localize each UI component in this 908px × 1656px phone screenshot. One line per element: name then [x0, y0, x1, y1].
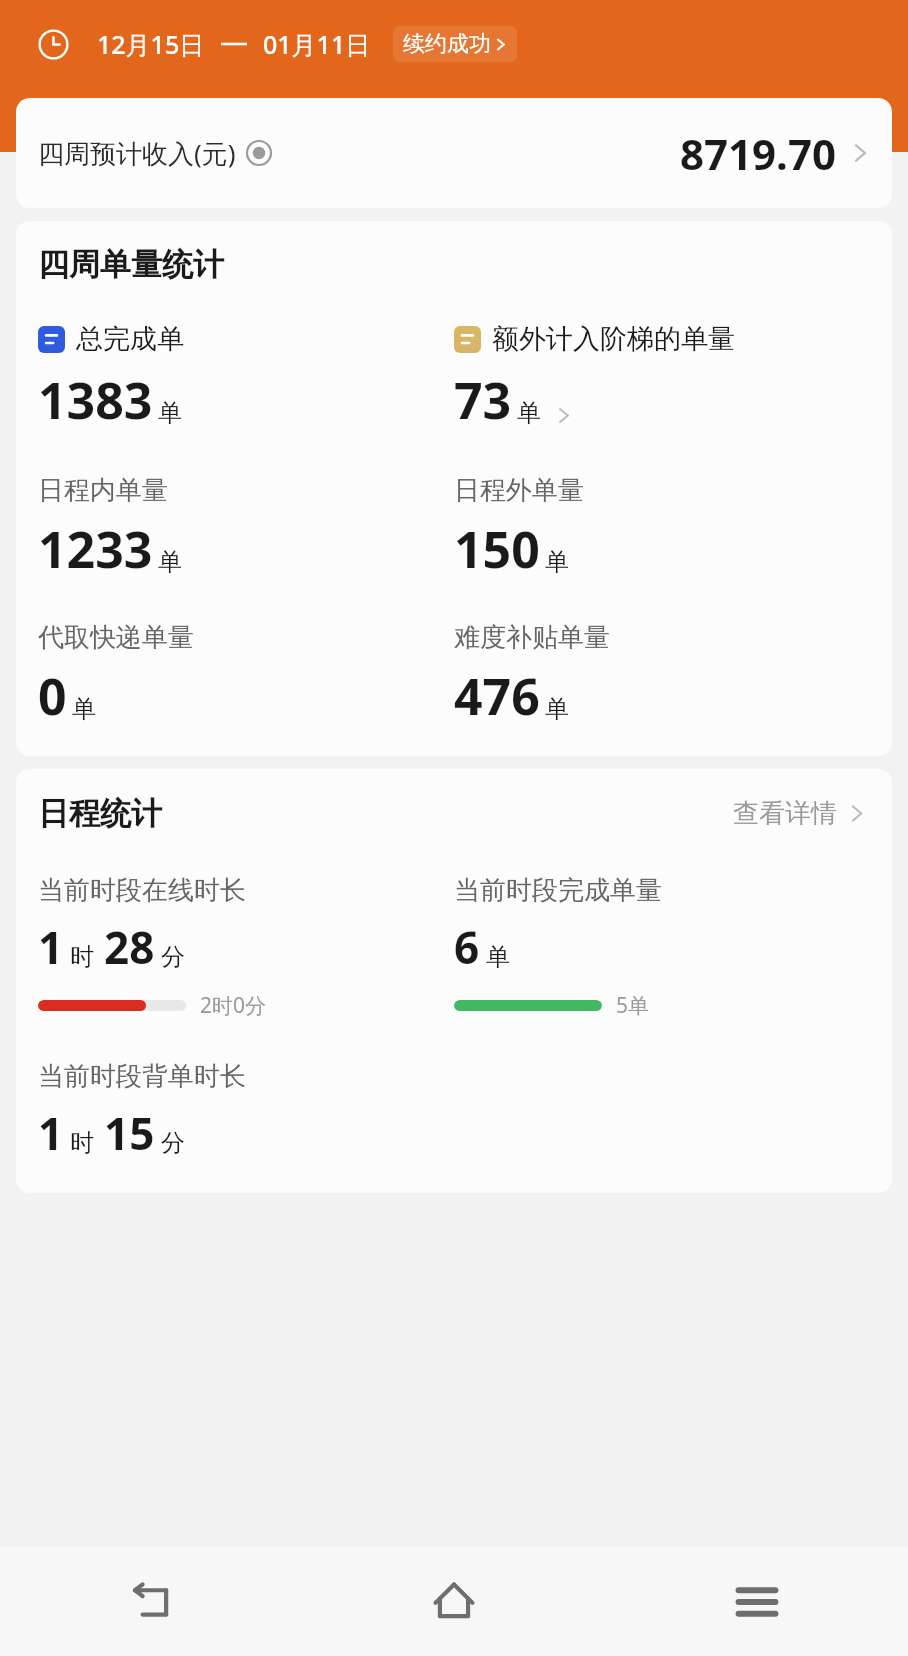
- staticText: 分: [161, 1128, 185, 1158]
- button[interactable]: Toggle income visibility: [246, 140, 272, 166]
- staticText: 150: [454, 515, 540, 583]
- staticText: 2时0分: [200, 991, 267, 1020]
- staticText: 续约成功: [403, 30, 491, 58]
- button[interactable]: Recent apps: [605, 1547, 908, 1656]
- staticText: 单: [545, 694, 569, 724]
- staticText: 5单: [616, 991, 650, 1020]
- staticText: 单: [486, 942, 510, 972]
- staticText: 总完成单: [76, 322, 184, 356]
- staticText: 当前时段在线时长: [38, 874, 246, 907]
- button[interactable]: 四周预计收入(元): [16, 98, 892, 208]
- staticText: 四周单量统计: [38, 245, 224, 284]
- staticText: 1: [38, 1103, 64, 1163]
- staticText: 当前时段背单时长: [38, 1060, 246, 1093]
- staticText: 时: [70, 942, 94, 972]
- button[interactable]: 续约成功: [393, 26, 517, 62]
- staticText: 6: [454, 917, 480, 977]
- staticText: 8719.70: [680, 125, 836, 182]
- staticText: 15: [104, 1103, 155, 1163]
- button[interactable]: Home: [302, 1547, 605, 1656]
- staticText: 单: [158, 398, 182, 428]
- staticText: 当前时段完成单量: [454, 874, 662, 907]
- staticText: 0: [38, 662, 67, 730]
- staticText: 分: [161, 942, 185, 972]
- staticText: 单: [517, 398, 541, 428]
- staticText: 日程内单量: [38, 474, 168, 507]
- staticText: 01月11日: [263, 27, 371, 61]
- staticText: 单: [72, 694, 96, 724]
- staticText: 476: [454, 662, 540, 730]
- staticText: 单: [545, 547, 569, 577]
- staticText: 时: [70, 1128, 94, 1158]
- staticText: 难度补贴单量: [454, 621, 610, 654]
- staticText: 28: [104, 917, 155, 977]
- staticText: 额外计入阶梯的单量: [492, 322, 735, 356]
- staticText: 12月15日: [97, 27, 205, 61]
- staticText: 单: [158, 547, 182, 577]
- button[interactable]: 查看详情: [729, 793, 870, 834]
- staticText: 日程外单量: [454, 474, 584, 507]
- staticText: 代取快递单量: [38, 621, 194, 654]
- staticText: 查看详情: [733, 797, 837, 830]
- staticText: 1: [38, 917, 64, 977]
- staticText: 1233: [38, 515, 153, 583]
- button[interactable]: Back: [0, 1547, 302, 1656]
- staticText: 73: [454, 366, 512, 434]
- staticText: 日程统计: [38, 794, 162, 833]
- staticText: 四周预计收入(元): [38, 135, 236, 171]
- staticText: 1383: [38, 366, 153, 434]
